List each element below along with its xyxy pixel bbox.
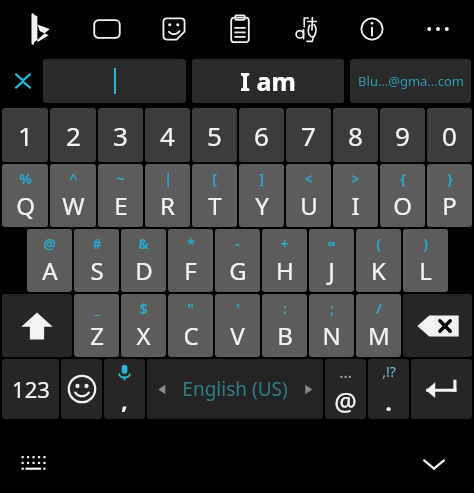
- staticText: …: [339, 361, 352, 383]
- button[interactable]: %: [2, 164, 48, 227]
- button[interactable]: Clipboard: [218, 7, 262, 51]
- staticText: R: [160, 189, 175, 222]
- button[interactable]: /: [356, 294, 401, 357]
- staticText: =: [327, 234, 336, 253]
- button[interactable]: Enter: [411, 359, 472, 419]
- staticText: (: [376, 234, 381, 253]
- button[interactable]: _: [74, 294, 119, 357]
- button[interactable]: Stickers: [152, 7, 196, 51]
- staticText: ]: [259, 169, 264, 188]
- button[interactable]: [: [192, 164, 237, 227]
- staticText: +: [280, 234, 289, 253]
- button[interactable]: 1: [2, 108, 48, 162]
- staticText: .: [385, 387, 392, 417]
- button[interactable]: 6: [239, 108, 284, 162]
- button[interactable]: 8: [333, 108, 378, 162]
- button[interactable]: Shift: [2, 294, 72, 357]
- button[interactable]: Switch keyboard: [14, 444, 54, 484]
- button[interactable]: GIF: [85, 7, 129, 51]
- button[interactable]: |: [145, 164, 190, 227]
- button[interactable]: &: [121, 229, 166, 292]
- staticText: 1: [18, 118, 33, 153]
- button[interactable]: Comma, voice input: [104, 359, 145, 419]
- staticText: W: [62, 189, 85, 222]
- staticText: H: [276, 254, 294, 287]
- staticText: ,!?: [382, 362, 396, 381]
- button[interactable]: Translate: [284, 7, 328, 51]
- staticText: N: [322, 319, 341, 352]
- button[interactable]: Blu…@gma…com: [350, 59, 471, 103]
- button[interactable]: Bing search: [18, 7, 62, 51]
- staticText: :: [283, 299, 287, 318]
- staticText: G: [229, 254, 247, 287]
- staticText: }: [447, 169, 453, 188]
- button[interactable]: Backspace: [403, 294, 472, 357]
- button[interactable]: 7: [286, 108, 331, 162]
- staticText: ': [236, 299, 240, 318]
- staticText: K: [371, 254, 386, 287]
- button[interactable]: Hide keyboard: [412, 442, 456, 486]
- button[interactable]: 2: [50, 108, 96, 162]
- staticText: M: [368, 319, 390, 352]
- button[interactable]: {: [380, 164, 425, 227]
- button[interactable]: -: [215, 229, 260, 292]
- button[interactable]: English (US): [147, 359, 323, 419]
- staticText: D: [135, 254, 153, 287]
- button[interactable]: Emoji: [61, 359, 102, 419]
- button[interactable]: =: [309, 229, 354, 292]
- button[interactable]: 5: [192, 108, 237, 162]
- button[interactable]: I am: [192, 59, 344, 103]
- button[interactable]: ~: [98, 164, 143, 227]
- button[interactable]: 9: [380, 108, 425, 162]
- staticText: >: [351, 169, 360, 188]
- button[interactable]: ,!?: [368, 359, 409, 419]
- button[interactable]: 0: [427, 108, 472, 162]
- staticText: L: [419, 254, 432, 287]
- button[interactable]: …: [325, 359, 366, 419]
- button[interactable]: Collapse suggestions: [3, 57, 43, 105]
- staticText: English (US): [182, 376, 288, 402]
- button[interactable]: @: [27, 229, 72, 292]
- staticText: ": [187, 299, 194, 318]
- staticText: 2: [66, 118, 81, 153]
- staticText: 3: [113, 118, 128, 153]
- button[interactable]: 4: [145, 108, 190, 162]
- staticText: 4: [160, 118, 175, 153]
- button[interactable]: ;: [309, 294, 354, 357]
- button[interactable]: }: [427, 164, 472, 227]
- staticText: [: [212, 169, 217, 188]
- staticText: #: [92, 234, 102, 253]
- staticText: *: [187, 234, 195, 253]
- button[interactable]: 3: [98, 108, 143, 162]
- button[interactable]: *: [168, 229, 213, 292]
- button[interactable]: ^: [50, 164, 96, 227]
- staticText: $: [139, 299, 148, 318]
- button[interactable]: More options: [416, 7, 460, 51]
- staticText: 7: [301, 118, 316, 153]
- staticText: ^: [69, 169, 78, 188]
- button[interactable]: ): [403, 229, 448, 292]
- button[interactable]: +: [262, 229, 307, 292]
- button[interactable]: [43, 59, 186, 103]
- button[interactable]: <: [286, 164, 331, 227]
- button[interactable]: ": [168, 294, 213, 357]
- staticText: T: [208, 189, 222, 222]
- button[interactable]: >: [333, 164, 378, 227]
- button[interactable]: $: [121, 294, 166, 357]
- button[interactable]: Info: [350, 7, 394, 51]
- button[interactable]: :: [262, 294, 307, 357]
- staticText: <: [304, 169, 313, 188]
- staticText: Blu…@gma…com: [358, 72, 464, 90]
- button[interactable]: (: [356, 229, 401, 292]
- staticText: I: [351, 189, 360, 222]
- staticText: 0: [442, 118, 457, 153]
- staticText: &: [138, 234, 149, 253]
- staticText: E: [114, 189, 128, 222]
- button[interactable]: 123: [2, 359, 59, 419]
- staticText: 9: [395, 118, 410, 153]
- button[interactable]: ]: [239, 164, 284, 227]
- staticText: |: [164, 169, 172, 188]
- button[interactable]: #: [74, 229, 119, 292]
- staticText: -: [235, 234, 240, 253]
- button[interactable]: ': [215, 294, 260, 357]
